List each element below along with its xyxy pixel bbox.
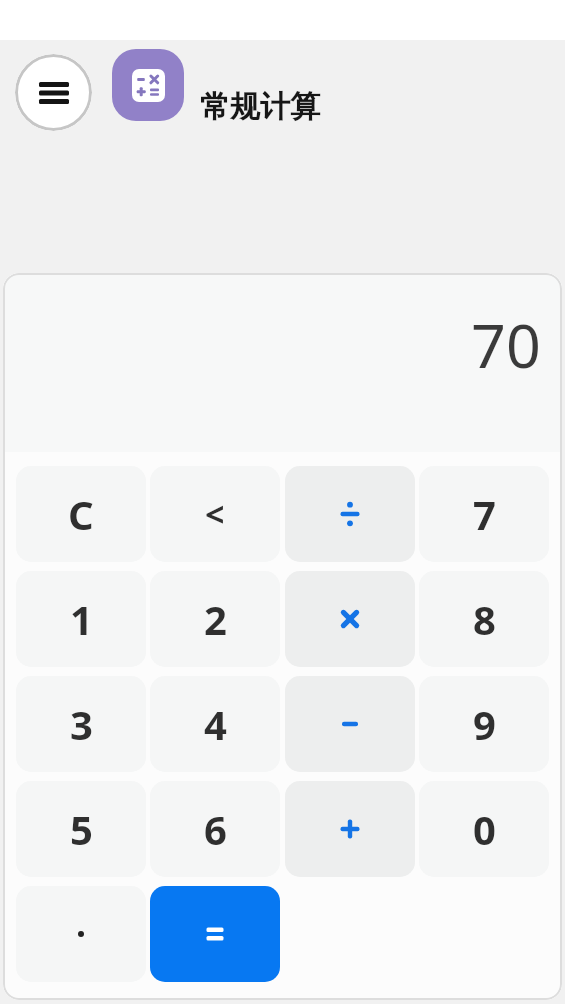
staticText: 70 [471, 303, 541, 386]
staticText: 7 [473, 487, 496, 541]
button[interactable]: < [150, 466, 280, 562]
button[interactable] [150, 886, 280, 982]
staticText: C [68, 487, 94, 541]
button[interactable] [285, 676, 415, 772]
button[interactable]: 3 [16, 676, 146, 772]
button[interactable]: 4 [150, 676, 280, 772]
staticText: 常规计算 [200, 88, 320, 126]
button[interactable]: 9 [419, 676, 549, 772]
button[interactable]: C [16, 466, 146, 562]
button[interactable]: 5 [16, 781, 146, 877]
button[interactable] [285, 571, 415, 667]
staticText: 4 [204, 697, 227, 751]
button[interactable]: 7 [419, 466, 549, 562]
staticText: 0 [473, 802, 496, 856]
button[interactable]: 6 [150, 781, 280, 877]
staticText: 3 [70, 697, 93, 751]
button[interactable] [285, 781, 415, 877]
button[interactable]: 1 [16, 571, 146, 667]
staticText: 9 [473, 697, 496, 751]
staticText: 1 [70, 592, 93, 646]
button[interactable] [285, 466, 415, 562]
staticText: 8 [473, 592, 496, 646]
button[interactable]: 2 [150, 571, 280, 667]
button[interactable] [15, 54, 92, 131]
button[interactable] [112, 49, 184, 121]
staticText: 2 [204, 592, 227, 646]
staticText: 6 [204, 802, 227, 856]
button[interactable]: 8 [419, 571, 549, 667]
button[interactable]: 0 [419, 781, 549, 877]
button[interactable] [16, 886, 146, 982]
staticText: 5 [70, 802, 93, 856]
staticText: < [205, 491, 225, 537]
